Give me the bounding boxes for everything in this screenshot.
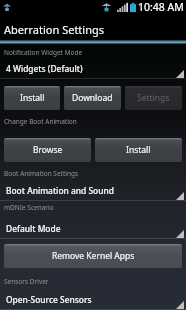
staticText: Sensors Driver [4, 277, 49, 286]
staticText: Download [72, 92, 113, 104]
staticText: Default Mode [6, 223, 61, 234]
staticText: mDNIe Scenario [4, 203, 54, 212]
staticText: 10:48 AM [138, 0, 184, 14]
button[interactable]: Default Mode [0, 219, 186, 239]
staticText: Open-Source Sensors [6, 294, 92, 305]
staticText: Change Boot Animation [4, 117, 77, 126]
button[interactable]: Install [4, 86, 60, 110]
staticText: Boot Animation Settings [4, 169, 79, 178]
staticText: 4 Widgets (Default) [6, 63, 83, 74]
staticText: Install [20, 92, 45, 104]
button[interactable]: Remove Kernel Apps [4, 244, 182, 268]
button[interactable]: Boot Animation and Sound [0, 181, 186, 201]
staticText: Aberration Settings [4, 22, 105, 37]
staticText: Settings [137, 92, 170, 104]
staticText: Browse [33, 144, 63, 156]
staticText: Boot Animation and Sound [6, 185, 114, 196]
staticText: Remove Kernel Apps [52, 250, 135, 262]
button[interactable]: Download [64, 86, 121, 110]
button[interactable]: 4 Widgets (Default) [0, 59, 186, 79]
staticText: Install [126, 144, 151, 156]
button[interactable]: Install [95, 138, 182, 162]
button[interactable]: Open-Source Sensors [0, 290, 186, 310]
staticText: Notification Widget Mode [4, 48, 83, 57]
button[interactable]: Browse [4, 138, 91, 162]
button[interactable]: Settings [125, 86, 182, 110]
